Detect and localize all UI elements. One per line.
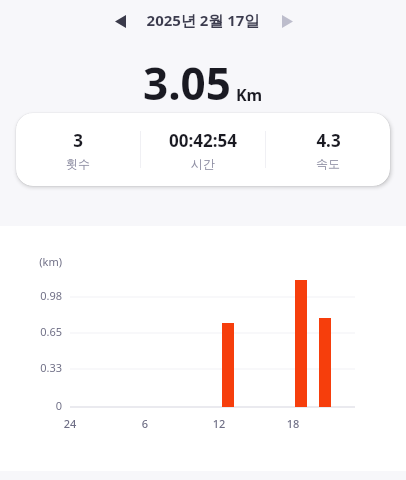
button[interactable]: 3 xyxy=(16,113,140,186)
staticText: 0.33 xyxy=(0,360,62,375)
staticText: 시간 xyxy=(191,156,215,171)
button[interactable]: 4.3 xyxy=(266,113,390,186)
staticText: 4.3 xyxy=(316,129,341,152)
button[interactable]: 2025년 2월 17일 xyxy=(0,10,406,30)
staticText: 3 xyxy=(73,129,83,152)
button[interactable]: 00:42:54 xyxy=(141,113,265,186)
staticText: (km) xyxy=(0,254,62,269)
staticText: 6 xyxy=(131,416,159,431)
button[interactable]: Previous day xyxy=(104,8,136,34)
staticText: 0 xyxy=(0,398,62,413)
staticText: 속도 xyxy=(316,156,340,171)
staticText: 0.65 xyxy=(0,324,62,339)
staticText: 12 xyxy=(205,416,233,431)
staticText: Km xyxy=(236,84,263,106)
staticText: 횟수 xyxy=(66,156,90,171)
staticText: 00:42:54 xyxy=(169,129,237,152)
staticText: 24 xyxy=(56,416,84,431)
staticText: 3.05 xyxy=(143,53,231,113)
staticText: 18 xyxy=(279,416,307,431)
button[interactable]: 3 xyxy=(16,113,390,186)
button[interactable]: Next day xyxy=(271,8,303,34)
staticText: 0.98 xyxy=(0,288,62,303)
